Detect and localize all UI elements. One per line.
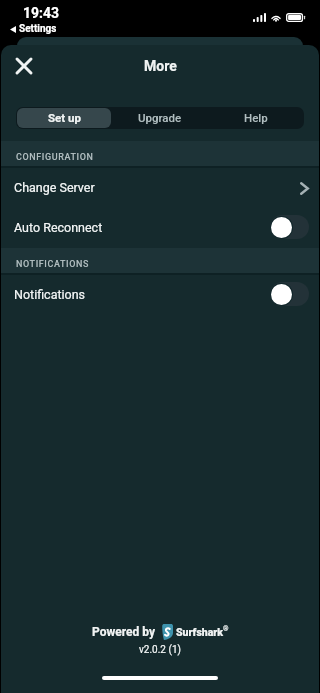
button[interactable]: Close bbox=[5, 47, 42, 84]
button[interactable]: Toggle Auto Reconnect bbox=[270, 215, 309, 239]
staticText: v2.0.2 (1) bbox=[139, 644, 181, 656]
staticText: NOTIFICATIONS bbox=[16, 259, 90, 270]
staticText: Notifications bbox=[14, 287, 86, 302]
button[interactable]: Upgrade bbox=[113, 108, 207, 128]
staticText: 19:43 bbox=[23, 5, 60, 21]
staticText: Upgrade bbox=[138, 111, 182, 124]
staticText: More bbox=[144, 58, 177, 74]
button[interactable]: Auto Reconnect bbox=[1, 208, 319, 248]
button[interactable]: Toggle Notifications bbox=[270, 282, 309, 306]
button[interactable]: Notifications bbox=[1, 275, 319, 315]
staticText: Change Server bbox=[14, 180, 95, 195]
staticText: Settings bbox=[19, 23, 57, 35]
staticText: Auto Reconnect bbox=[14, 220, 103, 235]
staticText: Powered by bbox=[92, 625, 155, 639]
staticText: ® bbox=[223, 625, 229, 633]
staticText: Surfshark bbox=[176, 626, 223, 638]
staticText: Set up bbox=[48, 111, 81, 124]
staticText: CONFIGURATION bbox=[16, 152, 94, 163]
button[interactable]: Change Server bbox=[1, 168, 319, 208]
button[interactable]: Help bbox=[209, 108, 303, 128]
staticText: Help bbox=[244, 111, 268, 124]
button[interactable]: Set up bbox=[17, 108, 111, 128]
